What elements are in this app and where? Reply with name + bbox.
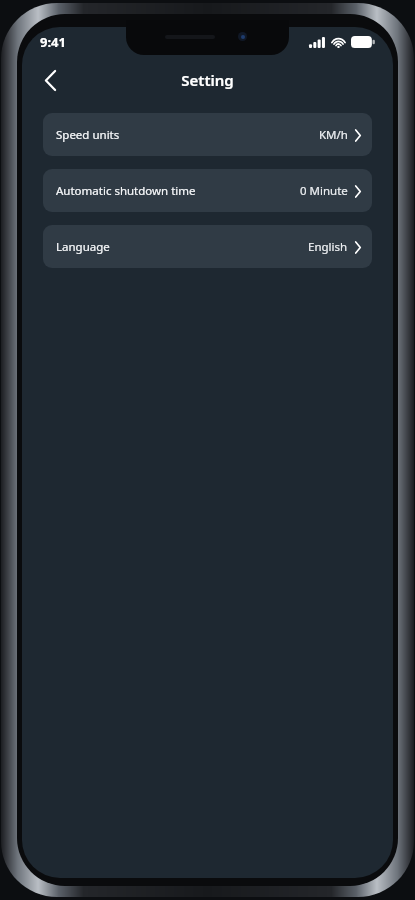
staticText: 0 Minute bbox=[300, 183, 348, 199]
button[interactable]: Speed units bbox=[43, 113, 372, 156]
staticText: Speed units bbox=[56, 127, 120, 143]
staticText: Language bbox=[56, 239, 110, 255]
staticText: 9:41 bbox=[40, 33, 66, 51]
button[interactable]: Back bbox=[32, 62, 68, 98]
button[interactable]: Language bbox=[43, 225, 372, 268]
staticText: KM/h bbox=[319, 127, 348, 143]
staticText: Setting bbox=[22, 70, 393, 90]
staticText: English bbox=[308, 239, 348, 255]
staticText: Automatic shutdown time bbox=[56, 183, 196, 199]
button[interactable]: Automatic shutdown time bbox=[43, 169, 372, 212]
